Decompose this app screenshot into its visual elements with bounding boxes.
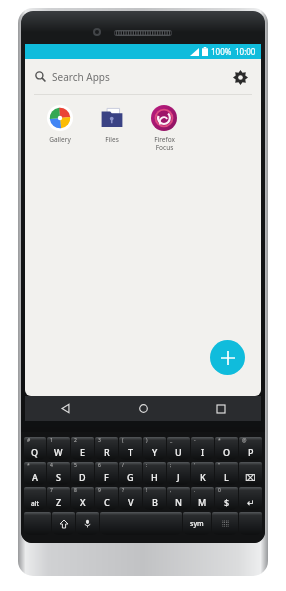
staticText: ( xyxy=(122,437,124,444)
staticText: _ xyxy=(170,437,173,444)
button[interactable]: Add app shortcut xyxy=(210,340,245,375)
button[interactable]: Home xyxy=(133,398,154,419)
button[interactable]: $ xyxy=(215,487,238,510)
staticText: K xyxy=(200,471,206,483)
button[interactable]: C xyxy=(95,487,118,510)
staticText: Gallery xyxy=(49,135,71,144)
staticText: , xyxy=(170,487,172,494)
button[interactable]: T xyxy=(119,437,142,460)
staticText: ! xyxy=(146,487,148,494)
button[interactable]: G xyxy=(119,462,142,485)
button[interactable]: B xyxy=(143,487,166,510)
staticText: ' xyxy=(194,462,196,469)
button[interactable]: M xyxy=(191,487,214,510)
button[interactable]: Left xyxy=(24,512,51,535)
staticText: 8 xyxy=(74,487,77,494)
button[interactable]: E xyxy=(71,437,94,460)
button[interactable]: J xyxy=(167,462,190,485)
staticText: : xyxy=(146,462,148,469)
staticText: / xyxy=(122,462,124,469)
staticText: 2 xyxy=(74,437,77,444)
staticText: 9 xyxy=(98,487,101,494)
staticText: Y xyxy=(152,446,158,458)
staticText: 4 xyxy=(50,462,53,469)
button[interactable]: Shift xyxy=(52,512,75,535)
staticText: O xyxy=(223,446,231,458)
button[interactable]: H xyxy=(143,462,166,485)
button[interactable]: Z xyxy=(47,487,70,510)
staticText: M xyxy=(198,496,207,508)
button[interactable]: Settings xyxy=(229,66,251,88)
button[interactable]: ↵ xyxy=(239,487,262,510)
button[interactable]: P xyxy=(239,437,262,460)
staticText: Files xyxy=(105,135,119,144)
staticText: ↵ xyxy=(247,498,255,508)
button[interactable]: Search Apps xyxy=(25,59,261,94)
button[interactable]: X xyxy=(71,487,94,510)
staticText: F xyxy=(104,471,109,483)
button[interactable]: O xyxy=(215,437,238,460)
button[interactable]: Files xyxy=(86,103,138,146)
staticText: 1 xyxy=(50,437,53,444)
staticText: 5 xyxy=(74,462,77,469)
button[interactable]: S xyxy=(47,462,70,485)
staticText: 7 xyxy=(50,487,53,494)
staticText: J xyxy=(177,471,180,483)
button[interactable]: A xyxy=(24,462,46,485)
staticText: E xyxy=(80,446,86,458)
staticText: W xyxy=(54,446,63,458)
staticText: $ xyxy=(224,496,230,508)
staticText: G xyxy=(127,471,134,483)
button[interactable]: Space xyxy=(100,512,182,535)
staticText: ⌧ xyxy=(245,473,256,483)
staticText: U xyxy=(175,446,182,458)
staticText: 10:00 xyxy=(235,46,256,57)
button[interactable]: D xyxy=(71,462,94,485)
staticText: R xyxy=(104,446,110,458)
staticText: D xyxy=(79,471,86,483)
staticText: ; xyxy=(170,462,172,469)
button[interactable]: alt xyxy=(24,487,46,510)
staticText: X xyxy=(80,496,86,508)
button[interactable]: Voice input xyxy=(76,512,99,535)
staticText: * xyxy=(27,462,30,469)
staticText: - xyxy=(194,437,196,444)
staticText: H xyxy=(151,471,158,483)
staticText: A xyxy=(32,471,38,483)
staticText: . xyxy=(194,487,196,494)
button[interactable]: F xyxy=(95,462,118,485)
button[interactable]: Y xyxy=(143,437,166,460)
button[interactable]: ⌧ xyxy=(239,462,262,485)
button[interactable]: R xyxy=(95,437,118,460)
staticText: ) xyxy=(146,437,148,444)
staticText: @ xyxy=(242,437,247,444)
button[interactable]: Gallery xyxy=(34,103,86,146)
staticText: Q xyxy=(31,446,39,458)
button[interactable]: Keyboard xyxy=(212,512,238,535)
button[interactable]: Q xyxy=(24,437,46,460)
staticText: 0 xyxy=(218,487,221,494)
button[interactable]: Back xyxy=(55,398,76,419)
staticText: B xyxy=(152,496,158,508)
staticText: 6 xyxy=(98,462,101,469)
staticText: Search Apps xyxy=(52,70,110,84)
staticText: N xyxy=(175,496,182,508)
staticText: # xyxy=(27,437,31,444)
staticText: Firefox Focus xyxy=(154,135,175,152)
button[interactable]: K xyxy=(191,462,214,485)
button[interactable]: W xyxy=(47,437,70,460)
staticText: V xyxy=(128,496,134,508)
button[interactable]: Recent apps xyxy=(210,398,231,419)
staticText: ? xyxy=(122,487,125,494)
button[interactable]: Firefox Focus xyxy=(138,103,190,154)
button[interactable]: N xyxy=(167,487,190,510)
button[interactable]: I xyxy=(191,437,214,460)
button[interactable]: L xyxy=(215,462,238,485)
button[interactable]: V xyxy=(119,487,142,510)
staticText: S xyxy=(56,471,61,483)
button[interactable]: Right xyxy=(239,512,262,535)
button[interactable]: U xyxy=(167,437,190,460)
staticText: L xyxy=(224,471,229,483)
button[interactable]: Symbols xyxy=(183,512,211,535)
staticText: Z xyxy=(56,496,62,508)
